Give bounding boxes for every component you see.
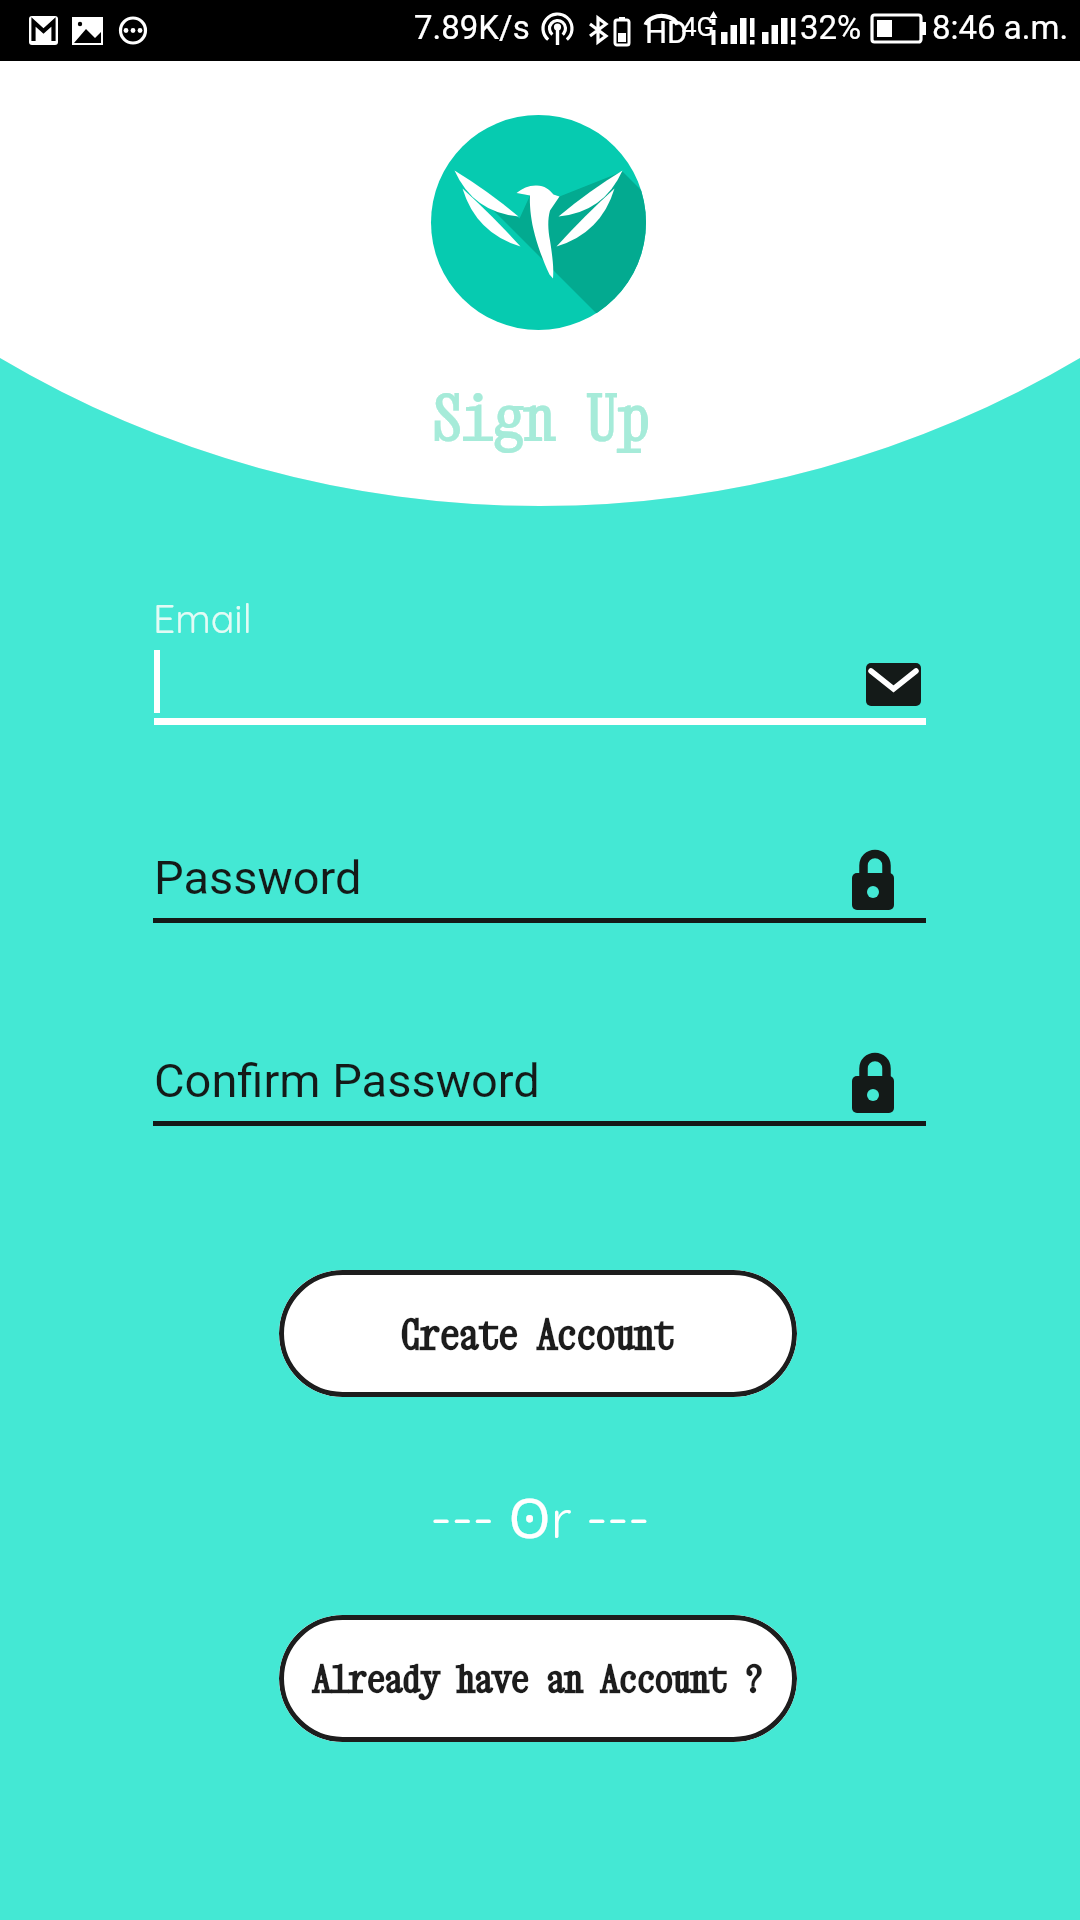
staticText: Already have an Account ? [313, 1657, 763, 1700]
staticText: Already have an Account ? [313, 1657, 763, 1700]
staticText: Password [154, 850, 362, 905]
staticText: 32% [800, 8, 862, 47]
staticText: Confirm Password [154, 1053, 540, 1108]
staticText: --- ʘr --- [0, 1480, 1080, 1554]
button[interactable]: Confirm password [845, 1048, 905, 1118]
staticText: Sign Up [0, 380, 1080, 454]
button[interactable]: Create Account [279, 1270, 797, 1397]
staticText: 8:46 a.m. [932, 8, 1069, 47]
staticText: 7.89K/s [414, 8, 530, 47]
staticText: Create Account [401, 1311, 675, 1357]
button[interactable]: Email [860, 655, 930, 715]
staticText: 4G [682, 12, 715, 42]
staticText: HD [645, 14, 688, 50]
staticText: Email [153, 594, 252, 643]
button[interactable]: Already have an Account ? [279, 1615, 797, 1742]
button[interactable]: Password [845, 845, 905, 915]
staticText: Create Account [401, 1311, 675, 1357]
staticText: Sign Up [0, 380, 1080, 454]
